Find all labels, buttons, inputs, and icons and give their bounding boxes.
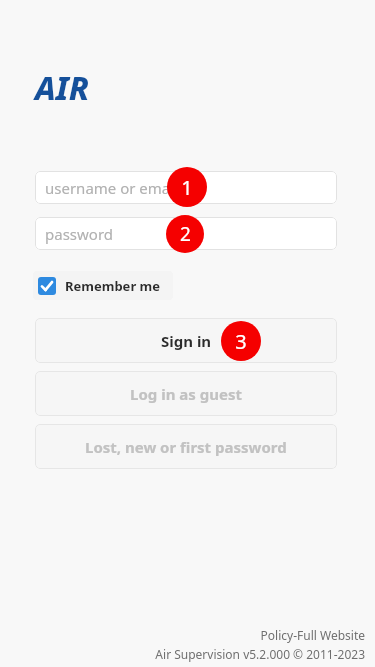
staticText: AIR	[35, 66, 89, 110]
staticText: Log in as guest	[130, 384, 242, 404]
button[interactable]: password	[35, 217, 337, 250]
staticText: password	[45, 224, 113, 244]
button[interactable]: Remember me	[33, 271, 173, 300]
other: Step 2	[166, 215, 204, 253]
button[interactable]: Log in as guest	[35, 371, 337, 416]
staticText: Lost, new or first password	[85, 437, 287, 457]
staticText: Sign in	[161, 331, 212, 351]
staticText: 1	[181, 174, 193, 201]
other: Step 1	[167, 167, 207, 207]
staticText: 3	[235, 328, 247, 355]
staticText: Policy-Full Website	[260, 627, 365, 643]
staticText: 2	[180, 221, 191, 247]
staticText: username or email	[45, 178, 178, 198]
button[interactable]: username or email	[35, 171, 337, 204]
button[interactable]: Lost, new or first password	[35, 424, 337, 469]
staticText: Remember me	[65, 277, 161, 295]
other: Step 3	[221, 321, 261, 361]
staticText: Air Supervision v5.2.000 © 2011-2023	[155, 646, 365, 662]
button[interactable]: Sign in	[35, 318, 337, 363]
